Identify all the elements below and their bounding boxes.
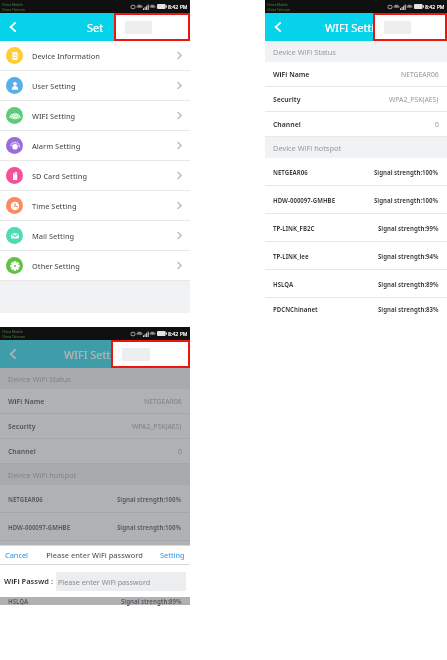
staticText: SD Card Setting: [32, 171, 87, 181]
staticText: 8:42 PM: [168, 3, 188, 10]
staticText: Channel: [8, 447, 36, 456]
staticText: 8:42 PM: [425, 3, 445, 10]
staticText: Device Information: [32, 51, 100, 61]
button[interactable]: Alarm Setting: [0, 131, 190, 160]
staticText: Other Setting: [32, 261, 80, 271]
staticText: Set: [87, 20, 104, 35]
button[interactable]: User Setting: [0, 71, 190, 100]
staticText: PDCNChinanet: [273, 305, 318, 313]
button[interactable]: Security: [0, 414, 190, 438]
staticText: Signal strength:100%: [374, 168, 439, 176]
staticText: WPA2_PSK(AES): [132, 422, 182, 431]
button[interactable]: HSLQA: [0, 597, 190, 605]
staticText: TP-LINK_lee: [8, 579, 44, 587]
button[interactable]: NETGEAR06: [0, 485, 190, 512]
button[interactable]: WIFI Setting: [0, 101, 190, 130]
staticText: China Telecom: [267, 7, 291, 12]
staticText: TP-LINK_FB2C: [273, 224, 315, 232]
staticText: China Telecom: [2, 334, 26, 339]
button[interactable]: Setting: [155, 550, 190, 560]
button[interactable]: Back: [0, 340, 26, 368]
staticText: Please enter WiFi password: [58, 577, 151, 587]
staticText: TP-LINK_FB2C: [8, 551, 50, 559]
staticText: China Mobile: [267, 2, 288, 7]
staticText: Signal strength:94%: [378, 252, 439, 260]
button[interactable]: TP-LINK_FB2C: [0, 541, 190, 568]
staticText: Device WiFi Status: [8, 374, 71, 384]
staticText: WPA2_PSK(AES): [389, 95, 439, 104]
button[interactable]: Back: [265, 13, 291, 41]
staticText: Signal strength:100%: [117, 523, 182, 531]
staticText: Cancel: [5, 550, 29, 560]
staticText: Signal strength:89%: [378, 280, 439, 288]
staticText: WIFI Setting: [32, 111, 76, 121]
staticText: TP-LINK_lee: [273, 252, 309, 260]
button[interactable]: TP-LINK_FB2C: [265, 214, 447, 241]
button[interactable]: Cancel: [0, 550, 34, 560]
staticText: User Setting: [32, 81, 76, 91]
button[interactable]: WiFi Name: [0, 389, 190, 413]
button[interactable]: WiFi Name: [265, 62, 447, 86]
button[interactable]: Other Setting: [0, 251, 190, 280]
button[interactable]: Device Information: [0, 41, 190, 70]
staticText: NETGEAR06: [401, 70, 439, 79]
staticText: Security: [8, 422, 36, 431]
button[interactable]: TP-LINK_lee: [0, 569, 190, 596]
staticText: WiFi Passwd :: [4, 576, 53, 586]
staticText: Signal strength:100%: [374, 196, 439, 204]
staticText: China Mobile: [2, 2, 23, 7]
staticText: HDW-000097-GMHBE: [273, 196, 336, 204]
staticText: Signal strength:89%: [121, 597, 182, 605]
button[interactable]: HDW-000097-GMHBE: [0, 513, 190, 540]
button[interactable]: Time Setting: [0, 191, 190, 220]
staticText: 0: [435, 120, 439, 129]
staticText: WiFi Name: [273, 70, 310, 79]
staticText: Signal strength:94%: [121, 579, 182, 587]
button[interactable]: NETGEAR06: [265, 158, 447, 185]
staticText: Setting: [160, 550, 185, 560]
staticText: Alarm Setting: [32, 141, 81, 151]
button[interactable]: TP-LINK_lee: [265, 242, 447, 269]
staticText: 0: [178, 447, 182, 456]
staticText: Device WiFi hotspot: [273, 143, 342, 153]
button[interactable]: SD Card Setting: [0, 161, 190, 190]
button[interactable]: Channel: [0, 439, 190, 463]
staticText: Signal strength:99%: [121, 551, 182, 559]
staticText: NETGEAR06: [273, 168, 308, 176]
button[interactable]: HSLQA: [265, 270, 447, 297]
staticText: Mail Setting: [32, 231, 75, 241]
staticText: Security: [273, 95, 301, 104]
staticText: Time Setting: [32, 201, 77, 211]
staticText: Device WiFi Status: [273, 47, 336, 57]
staticText: Signal strength:83%: [378, 305, 439, 313]
staticText: Signal strength:99%: [378, 224, 439, 232]
staticText: Signal strength:100%: [117, 495, 182, 503]
staticText: NETGEAR06: [144, 397, 182, 406]
button[interactable]: Channel: [265, 112, 447, 136]
staticText: HSLQA: [8, 597, 29, 605]
staticText: NETGEAR06: [8, 495, 43, 503]
button[interactable]: HDW-000097-GMHBE: [265, 186, 447, 213]
staticText: WIFI Setting: [325, 20, 388, 35]
staticText: Please enter WiFi password: [34, 550, 155, 560]
staticText: WiFi Name: [8, 397, 45, 406]
staticText: China Mobile: [2, 329, 23, 334]
button[interactable]: Mail Setting: [0, 221, 190, 250]
button[interactable]: Back: [0, 13, 26, 41]
staticText: Device WiFi hotspot: [8, 470, 77, 480]
staticText: China Telecom: [2, 7, 26, 12]
staticText: 8:42 PM: [168, 330, 188, 337]
staticText: Channel: [273, 120, 301, 129]
button[interactable]: Please enter WiFi password: [56, 572, 186, 591]
staticText: HDW-000097-GMHBE: [8, 523, 71, 531]
button[interactable]: Security: [265, 87, 447, 111]
staticText: HSLQA: [273, 280, 294, 288]
button[interactable]: PDCNChinanet: [265, 298, 447, 320]
staticText: WIFI Setting: [64, 347, 127, 362]
